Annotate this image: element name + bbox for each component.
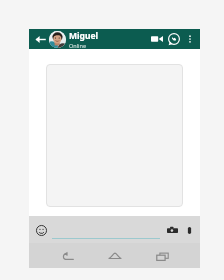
button[interactable]: Recent apps	[152, 246, 172, 266]
button[interactable]: Video call	[149, 31, 165, 47]
button[interactable]: Home	[105, 246, 125, 266]
button[interactable]: Voice message	[183, 224, 195, 236]
button[interactable]	[52, 221, 160, 239]
button[interactable]: Camera	[165, 223, 179, 237]
button[interactable]: Voice call	[166, 31, 182, 47]
staticText: Miguel	[69, 30, 99, 42]
button[interactable]: Emoji	[34, 223, 48, 237]
button[interactable]: Back	[57, 246, 77, 266]
button[interactable]: Back	[33, 32, 47, 46]
button[interactable]: More options	[183, 32, 197, 46]
button[interactable]: Contact photo	[49, 31, 66, 48]
staticText: Online	[69, 42, 87, 49]
